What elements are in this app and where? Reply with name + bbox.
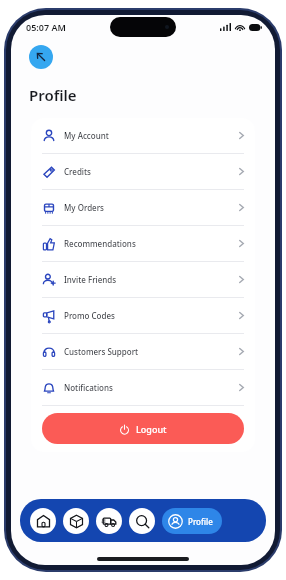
staticText: 05:07 AM [26,21,66,33]
staticText: Invite Friends [64,274,239,285]
staticText: Recommendations [64,238,239,249]
staticText: Credits [64,166,239,177]
button[interactable]: Customers Support [31,334,255,369]
staticText: Customers Support [64,346,239,357]
staticText: Notifications [64,382,239,393]
staticText: Profile [188,516,213,527]
staticText: Logout [136,423,167,435]
button[interactable]: My Account [31,118,255,153]
button[interactable]: My Orders [31,190,255,225]
staticText: Profile [29,85,77,105]
button[interactable]: Notifications [31,370,255,405]
staticText: Promo Codes [64,310,239,321]
button[interactable]: Recommendations [31,226,255,261]
staticText: My Account [64,130,239,141]
button[interactable]: Invite Friends [31,262,255,297]
staticText: My Orders [64,202,239,213]
button[interactable]: Packages [63,508,89,534]
button[interactable]: Profile [162,508,222,534]
button[interactable]: Delivery [96,508,122,534]
button[interactable]: Logout [42,413,244,444]
button[interactable]: Search [129,508,155,534]
button[interactable]: Credits [31,154,255,189]
button[interactable]: Promo Codes [31,298,255,333]
button[interactable]: Back [29,45,53,69]
button[interactable]: Home [30,508,56,534]
